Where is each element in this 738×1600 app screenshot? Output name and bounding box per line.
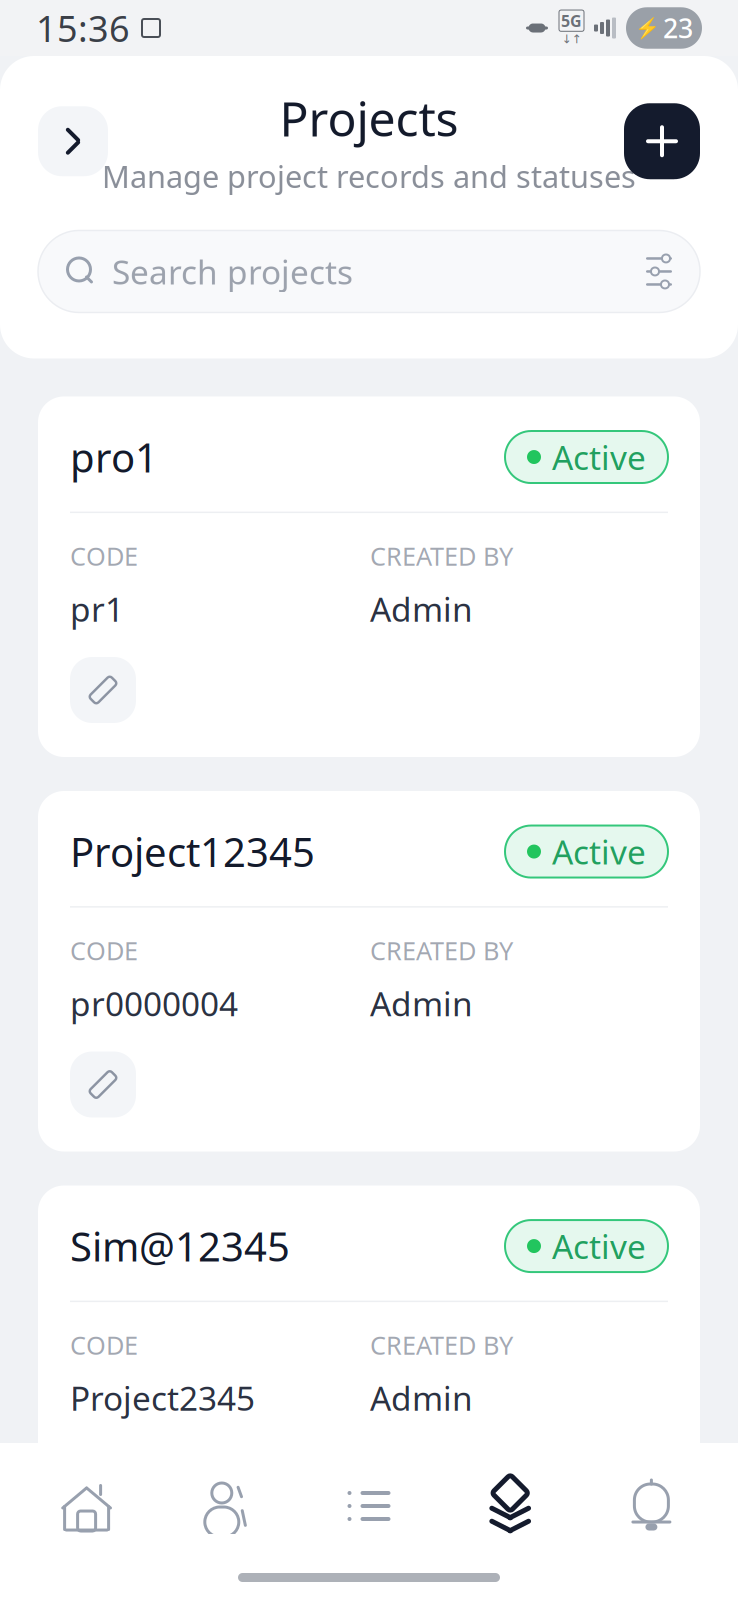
button[interactable]: People (157, 1461, 298, 1551)
button[interactable]: Edit Sim@12345 (70, 1446, 136, 1512)
staticText: ↓↑ (561, 32, 581, 46)
button[interactable]: Search projects (38, 230, 700, 312)
button[interactable]: Add project (624, 103, 700, 179)
button[interactable]: Home (16, 1461, 157, 1551)
staticText: CREATED BY (370, 1328, 513, 1362)
staticText: Admin (370, 981, 473, 1026)
staticText: CODE (70, 1328, 138, 1362)
staticText: Active (552, 829, 646, 874)
staticText: Project2345 (70, 1376, 255, 1420)
button[interactable]: Notifications (581, 1461, 722, 1551)
staticText: CREATED BY (370, 539, 513, 573)
staticText: Manage project records and statuses (102, 156, 636, 196)
staticText: CODE (70, 539, 138, 573)
staticText: Project12345 (70, 825, 315, 878)
button[interactable]: Edit pro1 (70, 657, 136, 723)
staticText: pr1 (70, 587, 124, 631)
staticText: Active (552, 1224, 646, 1268)
staticText: Active (552, 435, 646, 479)
staticText: Admin (370, 587, 473, 631)
button[interactable]: Tasks (298, 1461, 440, 1551)
staticText: ⚡ (635, 17, 660, 39)
staticText: 15:36 (36, 4, 130, 52)
staticText: Admin (370, 1376, 473, 1420)
staticText: Search projects (112, 249, 353, 294)
button[interactable]: Back (38, 106, 108, 176)
staticText: 5G (561, 10, 582, 31)
staticText: pr0000004 (70, 981, 238, 1026)
staticText: CODE (70, 934, 138, 967)
staticText: Sim@12345 (70, 1219, 290, 1273)
staticText: pro1 (70, 430, 158, 484)
staticText: CREATED BY (370, 934, 513, 967)
button[interactable]: Edit Project12345 (70, 1051, 136, 1117)
staticText: Projects (279, 86, 458, 150)
button[interactable]: Projects (440, 1461, 581, 1551)
staticText: 23 (663, 10, 693, 46)
